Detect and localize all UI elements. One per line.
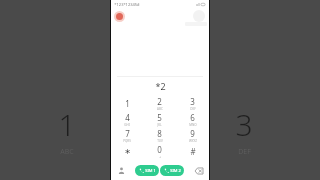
button[interactable]: 5 [143,111,176,127]
button[interactable]: Contacts [115,164,128,177]
staticText: ABC [157,107,163,111]
button[interactable]: Backspace [192,164,205,177]
staticText: 1 [125,98,130,109]
staticText: JKL [157,123,162,127]
staticText: GHI [124,123,130,127]
button[interactable]: 9 [176,127,209,143]
staticText: ABC [60,147,74,157]
button[interactable]: 1 [111,95,143,111]
button[interactable]: SIM 1 [135,165,159,176]
staticText: MNO [189,123,197,127]
staticText: 1 [58,104,76,145]
button[interactable] [114,11,125,22]
button[interactable]: 2 [143,95,176,111]
staticText: + [159,155,161,159]
staticText: ∗ [124,147,131,156]
staticText: 4 [125,112,130,123]
button[interactable]: 0 [143,143,176,159]
staticText: 6 [190,112,195,123]
staticText: 8 [157,128,162,139]
staticText: 7 [125,128,130,139]
staticText: SIM 2 [170,168,181,173]
button[interactable]: 3 [176,95,209,111]
button[interactable]: 8 [143,127,176,143]
staticText: *2 [155,80,166,92]
staticText: TUV [157,139,163,143]
button[interactable]: 6 [176,111,209,127]
staticText: 5 [157,112,162,123]
button[interactable]: SIM 2 [160,165,184,176]
staticText: *123*12345# [114,2,140,7]
staticText: all [195,2,201,7]
staticText: 0 [157,144,162,155]
button[interactable]: # [176,143,209,159]
staticText: PQRS [123,139,131,143]
staticText: DEF [238,147,251,157]
staticText: DEF [190,107,196,111]
staticText: 9 [190,128,195,139]
button[interactable]: 4 [111,111,143,127]
staticText: SIM 1 [145,168,156,173]
staticText: 3 [235,104,253,145]
staticText: 3 [190,96,195,107]
button[interactable]: 7 [111,127,143,143]
staticText: # [190,146,196,157]
staticText: WXYZ [189,139,197,143]
button[interactable]: ∗ [111,143,143,159]
staticText: 2 [157,96,162,107]
